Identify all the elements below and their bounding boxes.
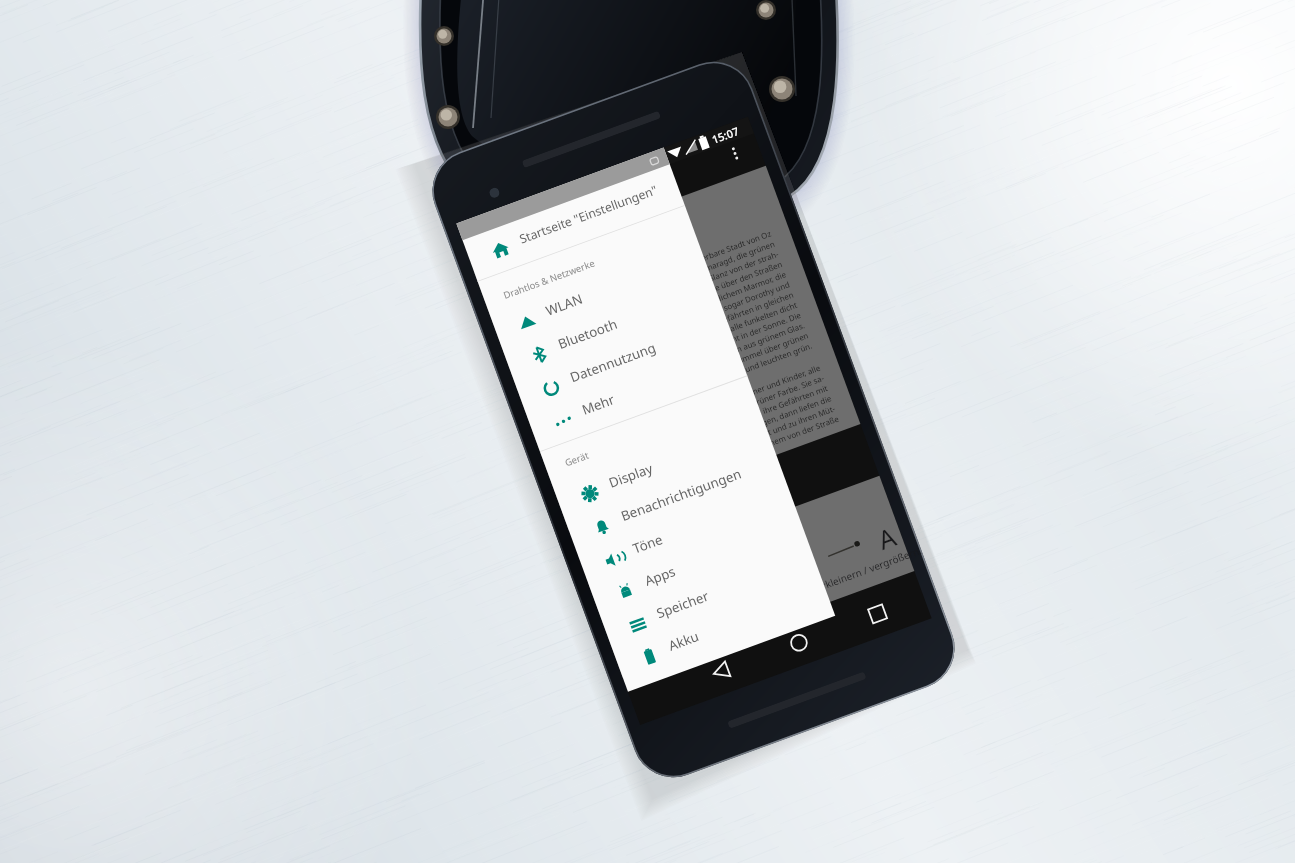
staticText: staunenden Augen, dann liefen die bbox=[570, 392, 833, 497]
staticText: war ein Smaragd, die grünen bbox=[513, 238, 776, 343]
staticText: Mehr bbox=[579, 390, 617, 419]
staticText: Benachrichtigungen bbox=[618, 465, 744, 525]
staticText: Häuser. Der Glanz von der strah- bbox=[517, 248, 780, 353]
staticText: Schimmer und leuchten grün. bbox=[550, 340, 813, 445]
staticText: blendeten sogar Dorothy und bbox=[528, 279, 791, 384]
staticText: Maßen. Sie alle funkelten dicht bbox=[536, 299, 798, 404]
button[interactable]: Benachrichtigungen bbox=[566, 446, 785, 554]
staticText: Speicher bbox=[654, 587, 711, 622]
staticText: Gerät bbox=[563, 449, 590, 469]
staticText: Display bbox=[606, 459, 656, 492]
staticText: tern, in keinem von der Straße bbox=[577, 413, 840, 518]
button[interactable]: WLAN bbox=[491, 241, 709, 348]
staticText: Es gab viele Männer und Kinder, alle bbox=[559, 362, 821, 467]
staticText: Die wunderbare Stadt von Oz bbox=[509, 228, 772, 333]
staticText: Schriftgröße verkleinern / vergrößern. bbox=[753, 543, 924, 617]
staticText: WLAN bbox=[543, 290, 585, 320]
button[interactable]: Display bbox=[554, 413, 772, 520]
staticText: Fenster waren aus grünem Glas. bbox=[543, 319, 806, 424]
button[interactable]: Apps bbox=[590, 511, 808, 619]
staticText: gekleidet in grüner Farbe. Sie sa- bbox=[562, 372, 825, 477]
staticText: hen Dorothy und ihre Gefährten mit bbox=[566, 382, 829, 487]
staticText: A bbox=[873, 518, 901, 557]
staticText: an dicht in der Sonne. Die bbox=[539, 309, 802, 414]
staticText: lenden Sonne über den Straßen bbox=[521, 258, 783, 363]
button[interactable]: Bluetooth bbox=[503, 274, 722, 382]
button[interactable]: Töne bbox=[578, 479, 797, 586]
button[interactable]: Speicher bbox=[601, 544, 820, 651]
button[interactable]: Mehr bbox=[527, 340, 746, 447]
staticText: Startseite "Einstellungen" bbox=[517, 181, 660, 247]
button[interactable]: Datennutzung bbox=[515, 308, 734, 415]
button[interactable]: Startseite Einstellungen bbox=[464, 169, 683, 276]
staticText: ihre Gefährten in gleichen bbox=[532, 289, 795, 394]
staticText: Bluetooth bbox=[555, 315, 620, 353]
staticText: Kinder alle fort und zu ihren Müt- bbox=[574, 403, 836, 508]
button[interactable]: Akku bbox=[613, 576, 832, 683]
staticText: Apps bbox=[642, 562, 678, 590]
staticText: 15:07 bbox=[710, 123, 741, 147]
staticText: Sogar der Himmel über grünen bbox=[547, 329, 810, 435]
staticText: Datennutzung bbox=[568, 338, 659, 386]
staticText: Drahtlos & Netzwerke bbox=[502, 257, 597, 302]
staticText: Töne bbox=[630, 530, 665, 557]
staticText: Akku bbox=[666, 627, 702, 655]
staticText: aus grünlichem Marmor, die bbox=[524, 268, 787, 373]
